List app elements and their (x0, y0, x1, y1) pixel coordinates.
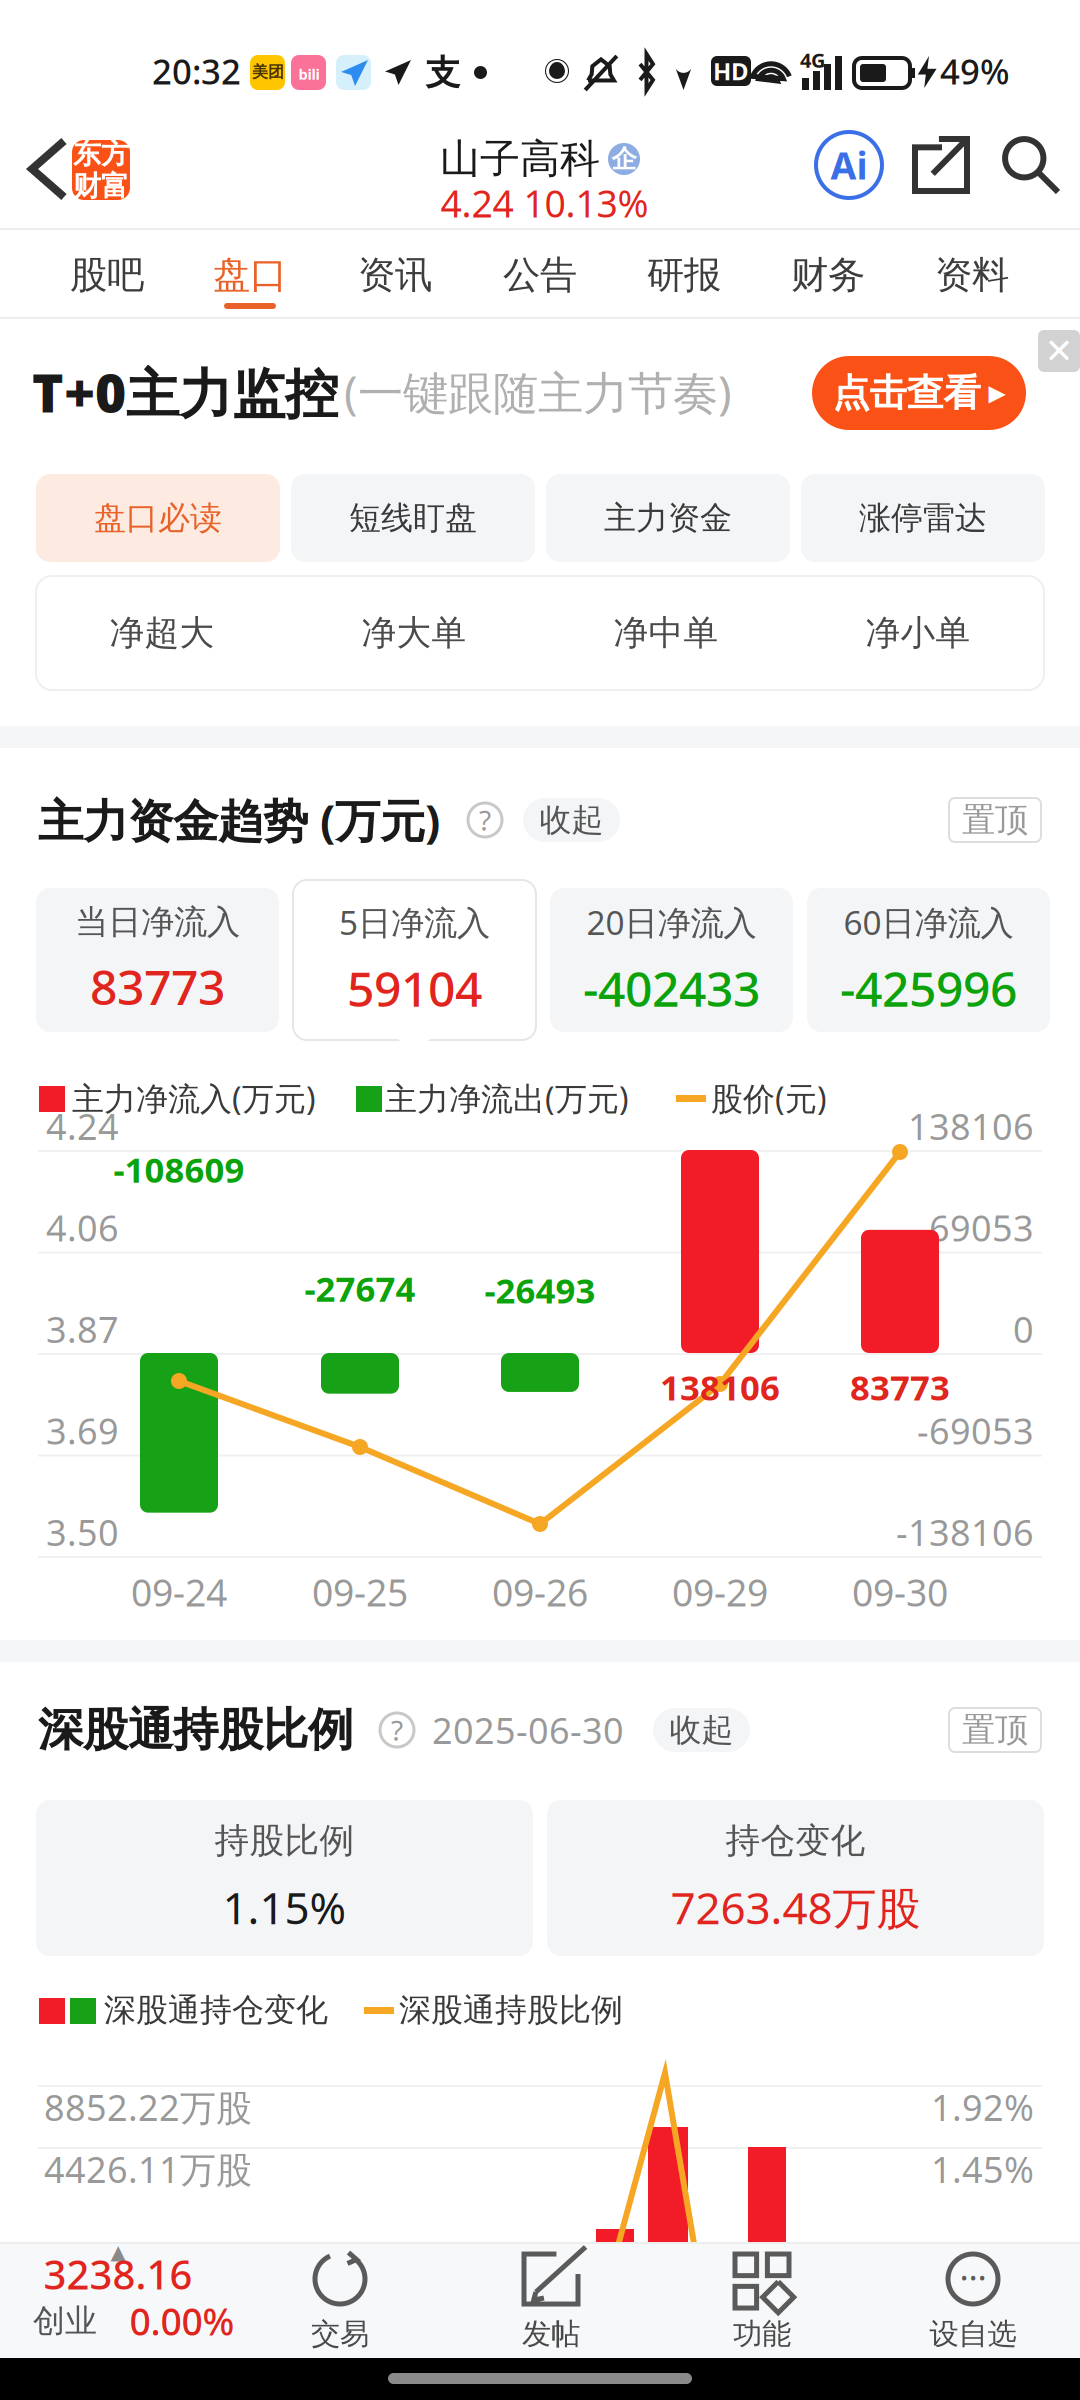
staticText: 资讯 (358, 252, 432, 298)
staticText: 研报 (647, 252, 721, 298)
button[interactable]: 设自选 (873, 2244, 1073, 2358)
button[interactable]: 盘口 (180, 232, 320, 318)
staticText: 09-30 (852, 1567, 948, 1617)
staticText: 3.69 (46, 1407, 119, 1454)
button[interactable]: 关闭 (1038, 330, 1080, 372)
staticText: 深股通持股比例 (399, 1990, 623, 2030)
button[interactable]: 财务 (758, 232, 898, 318)
button[interactable]: 净中单 (540, 576, 792, 690)
button[interactable]: 说明 (380, 1713, 414, 1747)
staticText: 深股通持股比例 (38, 1702, 353, 1758)
staticText: 短线盯盘 (349, 498, 477, 538)
staticText: 7263.48万股 (670, 1878, 920, 1936)
staticText: 置顶 (962, 799, 1028, 840)
staticText: bili (298, 64, 319, 84)
staticText: 净小单 (865, 612, 970, 654)
staticText: 2025-06-30 (432, 1706, 624, 1754)
button[interactable]: 20日净流入 (550, 888, 793, 1032)
staticText: 09-26 (492, 1567, 588, 1617)
staticText: 当日净流入 (75, 902, 240, 943)
button[interactable]: 主力资金 (546, 474, 790, 562)
button[interactable]: 资料 (902, 232, 1042, 318)
staticText: 5日净流入 (339, 900, 490, 944)
staticText: 发帖 (522, 2316, 580, 2352)
button[interactable]: 股吧 (37, 232, 177, 318)
staticText: 4.24 (46, 1102, 119, 1150)
staticText: 股吧 (70, 252, 144, 298)
staticText: 0.00% (129, 2296, 234, 2346)
button[interactable]: 分享 (908, 132, 974, 198)
button[interactable]: 收起 (653, 1708, 750, 1752)
staticText: Ai (830, 140, 867, 190)
button[interactable]: 置顶 (949, 1708, 1041, 1752)
button[interactable]: 功能 (662, 2244, 862, 2358)
button[interactable]: 置顶 (949, 798, 1041, 842)
staticText: 83773 (90, 955, 225, 1018)
staticText: 4.06 (46, 1204, 119, 1251)
staticText: 20:32 (152, 48, 241, 94)
staticText: 69053 (929, 1204, 1034, 1251)
staticText: -402433 (583, 956, 760, 1020)
staticText: 置顶 (962, 1709, 1028, 1750)
staticText: 4.24 (440, 178, 513, 228)
staticText: 10.13% (523, 178, 648, 228)
staticText: ✕ (1044, 331, 1073, 371)
button[interactable]: 涨停雷达 (801, 474, 1045, 562)
button[interactable]: 点击查看 (812, 356, 1026, 430)
staticText: ··· (959, 2254, 986, 2300)
button[interactable]: 短线盯盘 (291, 474, 535, 562)
button[interactable]: 发帖 (451, 2244, 651, 2358)
button[interactable]: 60日净流入 (807, 888, 1050, 1032)
button[interactable]: 净大单 (288, 576, 540, 690)
staticText: 4G (800, 47, 825, 73)
staticText: 涨停雷达 (859, 498, 987, 538)
staticText: 企 (611, 143, 636, 174)
staticText: 59104 (347, 956, 482, 1020)
button[interactable]: 净小单 (792, 576, 1044, 690)
staticText: -27674 (304, 1265, 415, 1311)
staticText: 净大单 (361, 612, 466, 654)
staticText: 深股通持仓变化 (104, 1990, 328, 2030)
staticText: 交易 (311, 2316, 369, 2352)
staticText: 东方 (73, 137, 129, 171)
staticText: 60日净流入 (843, 900, 1013, 944)
button[interactable]: 返回 (0, 114, 96, 224)
staticText: 20日净流入 (586, 900, 756, 944)
button[interactable]: 收起 (523, 798, 620, 842)
staticText: 4426.11万股 (44, 2145, 252, 2193)
staticText: 净超大 (109, 612, 214, 654)
staticText: 财务 (791, 252, 865, 298)
staticText: 主力资金 (604, 498, 732, 538)
button[interactable]: 资讯 (325, 232, 465, 318)
staticText: ? (391, 1711, 403, 1749)
staticText: 主力资金趋势 (万元) (38, 790, 440, 850)
button[interactable]: 5日净流入 (293, 880, 536, 1040)
button[interactable]: 净超大 (36, 576, 288, 690)
button[interactable]: 研报 (614, 232, 754, 318)
staticText: 3238.16 (43, 2247, 192, 2300)
button[interactable]: 说明 (468, 803, 502, 837)
button[interactable]: 搜索 (998, 132, 1064, 198)
staticText: -26493 (484, 1267, 595, 1313)
staticText: 主力净流入(万元) (72, 1077, 316, 1119)
staticText: -138106 (896, 1508, 1034, 1556)
staticText: 股价(元) (711, 1077, 827, 1119)
button[interactable]: 盘口必读 (36, 474, 280, 562)
button[interactable]: 当日净流入 (36, 888, 279, 1032)
button[interactable]: 交易 (240, 2244, 440, 2358)
staticText: 主力净流出(万元) (385, 1077, 629, 1119)
staticText: ▲ (110, 2241, 125, 2263)
button[interactable]: 公告 (470, 232, 610, 318)
staticText: 山子高科 (440, 134, 600, 183)
staticText: 设自选 (929, 2316, 1016, 2352)
button[interactable]: AI 助手 (816, 132, 882, 198)
button[interactable]: 东方财富 (72, 140, 130, 200)
staticText: 1.45% (931, 2145, 1034, 2193)
staticText: 公告 (503, 252, 577, 298)
staticText: 盘口 (213, 252, 287, 298)
staticText: 盘口必读 (94, 498, 222, 538)
button[interactable]: ▲ (0, 2244, 240, 2358)
staticText: 09-25 (312, 1567, 408, 1617)
staticText: 1.15% (222, 1878, 346, 1936)
staticText: ? (479, 801, 491, 839)
